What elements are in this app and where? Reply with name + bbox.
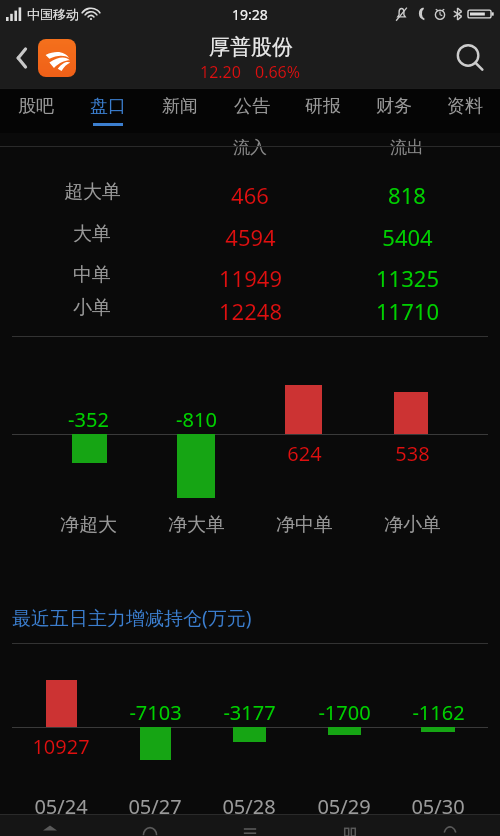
staticText: 流入 [233, 137, 267, 158]
staticText: 12.20 [200, 61, 241, 83]
staticText: 股吧 [18, 95, 54, 118]
staticText: 466 [231, 180, 269, 210]
staticText: 净中单 [276, 513, 333, 537]
button[interactable]: Home [0, 814, 100, 836]
button[interactable]: 新闻 [144, 88, 216, 133]
staticText: 05/28 [222, 793, 276, 820]
staticText: 11949 [219, 263, 282, 293]
staticText: -1700 [318, 699, 371, 726]
staticText: 大单 [73, 222, 111, 246]
staticText: 流出 [390, 137, 424, 158]
staticText: 05/24 [34, 793, 88, 820]
staticText: 净大单 [168, 513, 225, 537]
staticText: 5404 [382, 222, 433, 252]
staticText: 最近五日主力增减持仓(万元) [12, 605, 252, 631]
staticText: 净小单 [384, 513, 441, 537]
staticText: 12248 [219, 296, 282, 326]
button[interactable]: 资料 [429, 88, 500, 133]
staticText: 公告 [234, 95, 270, 118]
staticText: 4594 [225, 222, 276, 252]
staticText: 资料 [447, 95, 483, 118]
button[interactable]: Trade [200, 814, 300, 836]
staticText: -7103 [129, 699, 182, 726]
button[interactable]: App logo [38, 39, 76, 77]
staticText: 05/30 [411, 793, 465, 820]
staticText: 新闻 [162, 95, 198, 118]
staticText: 05/29 [317, 793, 371, 820]
button[interactable]: Back [0, 28, 44, 88]
staticText: 净超大 [60, 513, 117, 537]
button[interactable]: 财务 [358, 88, 429, 133]
staticText: 超大单 [64, 180, 121, 204]
button[interactable]: 盘口 [72, 88, 144, 133]
button[interactable]: 研报 [287, 88, 358, 133]
staticText: 小单 [73, 296, 111, 320]
staticText: 538 [395, 440, 430, 467]
button[interactable]: Search [440, 28, 500, 88]
staticText: 818 [388, 180, 426, 210]
staticText: 0.66% [255, 61, 301, 83]
staticText: 厚普股份 [209, 34, 293, 60]
staticText: 624 [287, 440, 322, 467]
staticText: -3177 [223, 699, 276, 726]
staticText: 10927 [32, 733, 90, 760]
staticText: 19:28 [232, 5, 268, 24]
staticText: -352 [68, 406, 109, 433]
staticText: -810 [176, 406, 217, 433]
button[interactable]: 股吧 [0, 88, 72, 133]
staticText: 中国移动 [27, 6, 79, 22]
staticText: 财务 [376, 95, 412, 118]
button[interactable]: Mine [400, 814, 500, 836]
staticText: -1162 [412, 699, 465, 726]
staticText: 中单 [73, 263, 111, 287]
staticText: 05/27 [128, 793, 182, 820]
staticText: 研报 [305, 95, 341, 118]
button[interactable]: Quotes [100, 814, 200, 836]
button[interactable]: 公告 [216, 88, 287, 133]
staticText: 盘口 [90, 95, 126, 118]
staticText: 11710 [376, 296, 439, 326]
button[interactable]: Markets [300, 814, 400, 836]
staticText: 11325 [376, 263, 439, 293]
